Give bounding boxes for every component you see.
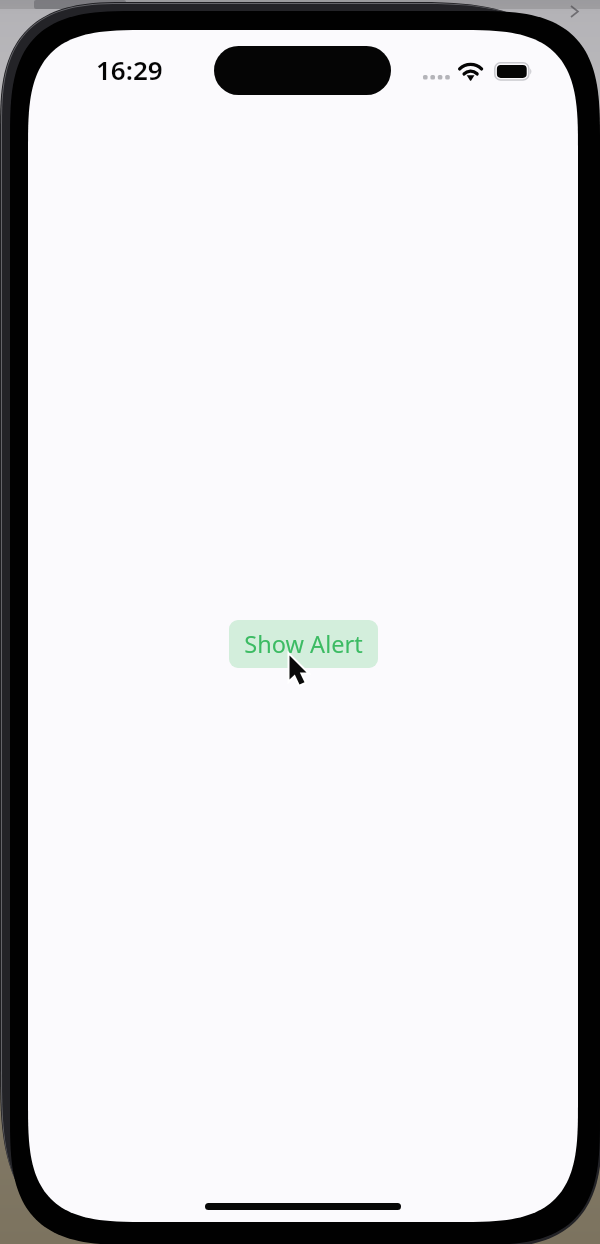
staticText: Show Alert (244, 628, 363, 660)
staticText: 16:29 (96, 52, 163, 87)
button[interactable]: Show Alert (229, 620, 378, 668)
